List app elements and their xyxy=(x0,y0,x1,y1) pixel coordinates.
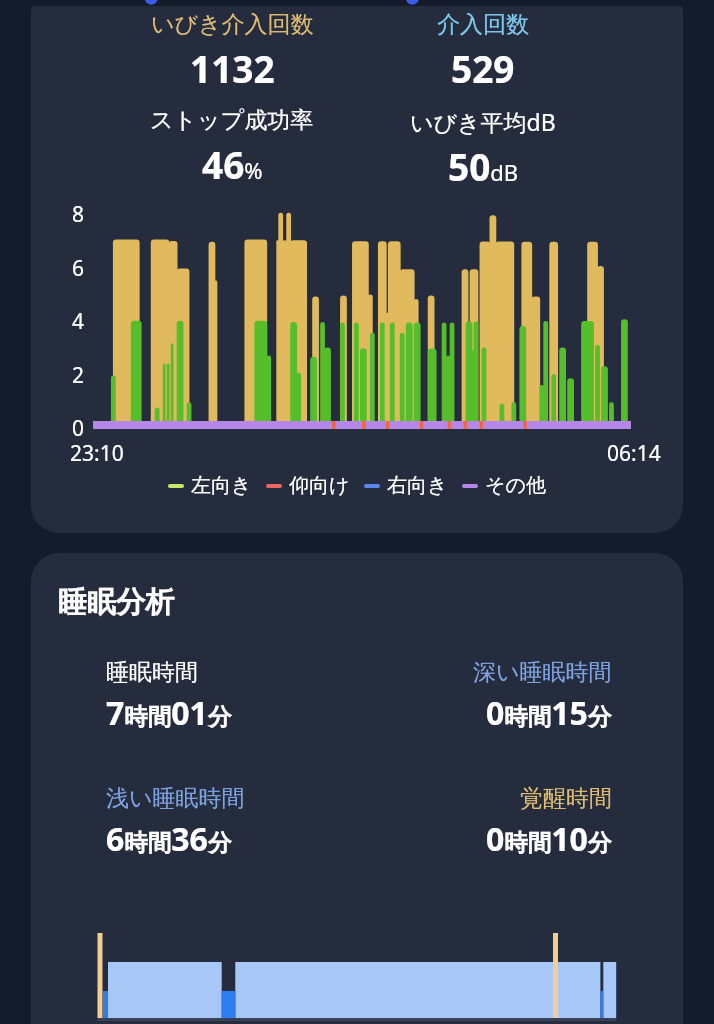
staticText: 23:10 xyxy=(70,439,124,468)
button[interactable]: いびき平均dB xyxy=(358,106,608,186)
button[interactable]: 仰向け xyxy=(266,473,350,498)
staticText: いびき介入回数 xyxy=(151,10,314,39)
staticText: 睡眠時間 xyxy=(106,658,198,687)
staticText: 0時間10分 xyxy=(486,817,612,861)
button[interactable]: 睡眠時間 xyxy=(106,658,406,735)
button[interactable]: 覚醒時間 xyxy=(312,784,612,861)
staticText: 右向き xyxy=(387,473,448,498)
button[interactable]: ストップ成功率 xyxy=(107,106,357,186)
staticText: 0 xyxy=(72,414,85,442)
staticText: 介入回数 xyxy=(437,10,529,39)
staticText: 4 xyxy=(72,307,85,335)
staticText: 仰向け xyxy=(289,473,350,498)
staticText: 50dB xyxy=(448,141,519,186)
button[interactable]: 浅い睡眠時間 xyxy=(106,784,406,861)
staticText: 529 xyxy=(451,43,515,90)
button[interactable]: 右向き xyxy=(364,473,448,498)
button[interactable] xyxy=(31,6,683,533)
button[interactable]: 深い睡眠時間 xyxy=(312,658,612,735)
staticText: 6 xyxy=(72,254,85,282)
staticText: 2 xyxy=(72,361,85,389)
staticText: 7時間01分 xyxy=(106,691,232,735)
staticText: 睡眠分析 xyxy=(58,584,174,621)
staticText: いびき平均dB xyxy=(410,106,556,137)
staticText: 8 xyxy=(72,200,85,228)
button[interactable] xyxy=(31,553,683,1024)
staticText: その他 xyxy=(485,473,546,498)
staticText: 06:14 xyxy=(607,439,661,468)
button[interactable]: その他 xyxy=(462,473,546,498)
staticText: 46% xyxy=(202,139,263,186)
staticText: 深い睡眠時間 xyxy=(473,658,612,687)
staticText: 1132 xyxy=(190,43,275,90)
staticText: 覚醒時間 xyxy=(520,784,612,813)
staticText: 0時間15分 xyxy=(486,691,612,735)
button[interactable]: いびき介入回数 xyxy=(107,10,357,90)
staticText: 6時間36分 xyxy=(106,817,232,861)
button[interactable]: 左向き xyxy=(168,473,252,498)
staticText: ストップ成功率 xyxy=(150,106,314,135)
button[interactable]: 介入回数 xyxy=(358,10,608,90)
staticText: 浅い睡眠時間 xyxy=(106,784,245,813)
staticText: 左向き xyxy=(191,473,252,498)
